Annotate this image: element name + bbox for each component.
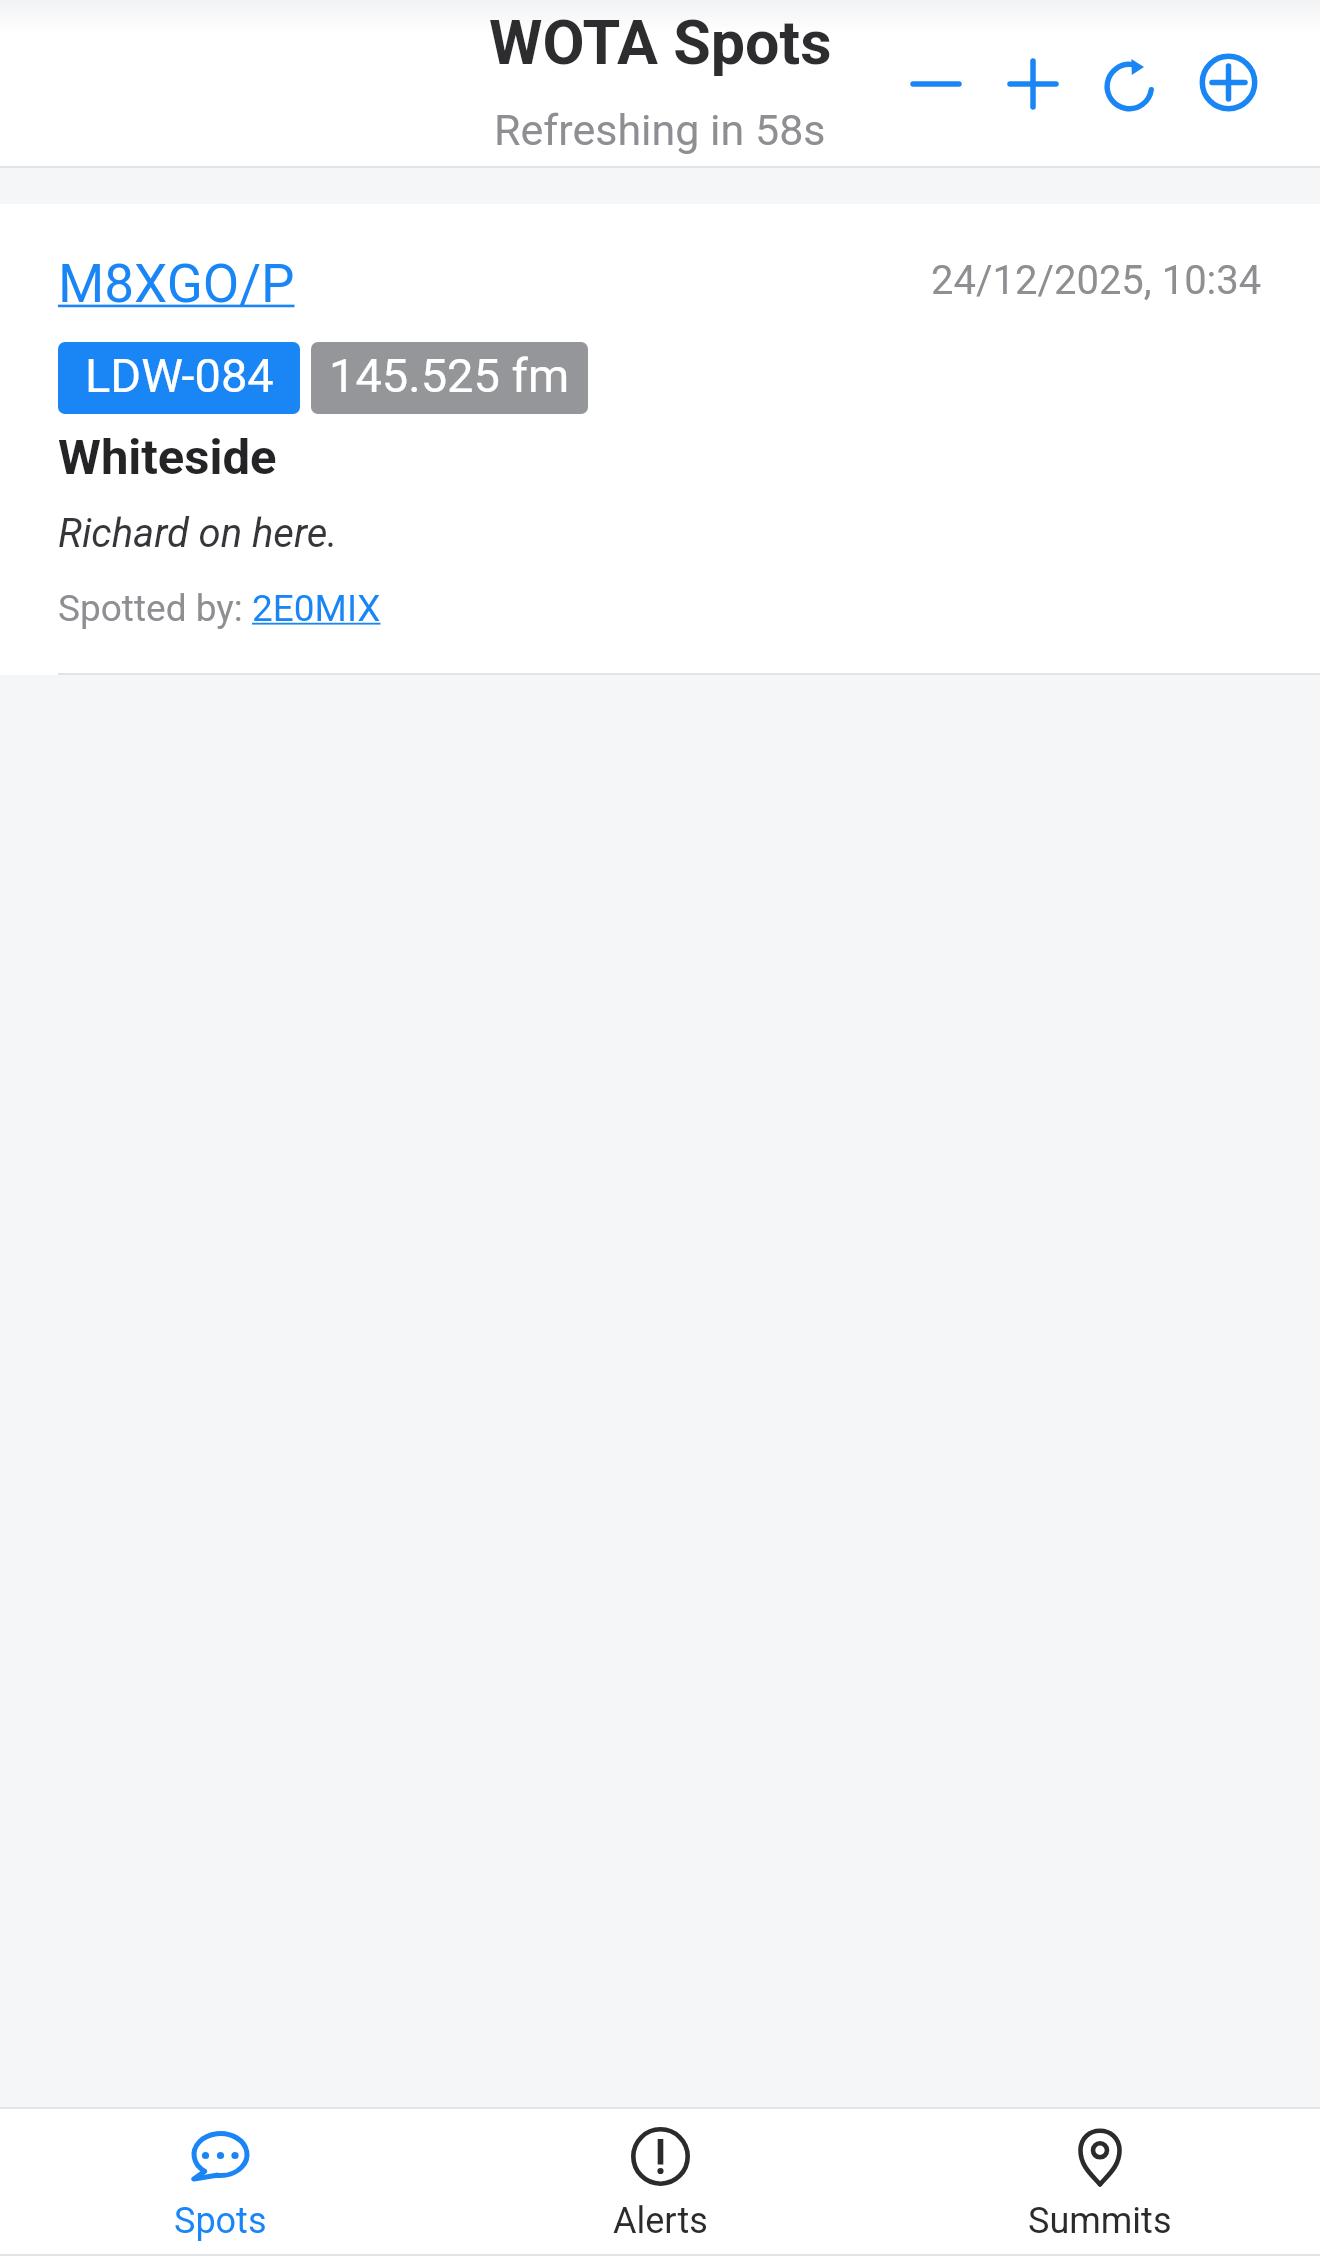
staticText: 24/12/2025, 10:34 — [931, 257, 1262, 304]
button[interactable]: Summits — [880, 2109, 1320, 2254]
staticText: LDW-084 — [85, 348, 274, 403]
button[interactable]: M8XGO/P — [58, 253, 295, 315]
staticText: Spots — [174, 2200, 267, 2242]
button[interactable]: Alerts — [440, 2109, 880, 2254]
staticText: Alerts — [613, 2200, 708, 2242]
button[interactable]: Spots — [0, 2109, 440, 2254]
button[interactable]: Refresh — [1088, 46, 1170, 128]
staticText: Spotted by: — [58, 587, 252, 630]
staticText: 2E0MIX — [252, 587, 381, 630]
staticText: WOTA Spots — [489, 7, 832, 78]
staticText: 145.525 fm — [329, 348, 570, 403]
button[interactable]: Increase — [992, 43, 1074, 125]
staticText: Whiteside — [58, 429, 277, 486]
staticText: Richard on here. — [58, 510, 338, 557]
staticText: M8XGO/P — [58, 253, 295, 315]
button[interactable]: 2E0MIX — [252, 587, 381, 630]
staticText: Summits — [1028, 2200, 1172, 2242]
button[interactable]: Add — [1182, 36, 1275, 129]
button[interactable]: Decrease — [895, 43, 977, 125]
staticText: Refreshing in 58s — [494, 105, 826, 155]
